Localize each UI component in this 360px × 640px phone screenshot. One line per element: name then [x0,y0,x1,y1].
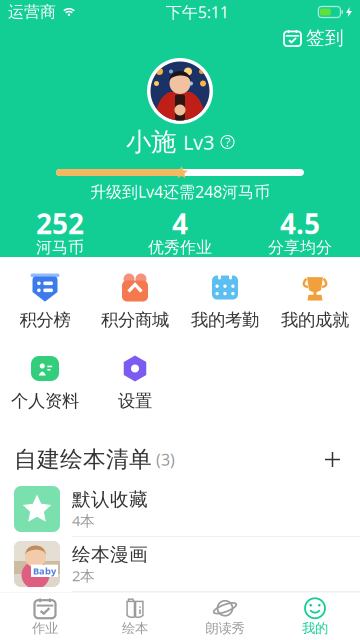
staticText: 我的考勤 [191,309,259,331]
button[interactable]: 我的成就 [270,272,360,329]
staticText: 分享均分 [268,238,332,257]
staticText: Lv3 [183,129,214,155]
staticText: 作业 [32,620,58,636]
staticText: 我的 [302,620,328,636]
staticText: 朗读秀 [205,620,244,636]
staticText: 默认收藏 [72,488,148,511]
button[interactable]: Add list [319,446,346,473]
staticText: 升级到Lv4还需248河马币 [90,181,270,202]
staticText: (3) [152,449,175,470]
button[interactable]: 设置 [90,353,180,410]
staticText: 设置 [118,390,152,412]
button[interactable]: Baby [0,537,360,592]
staticText: 绘本 [122,620,148,636]
staticText: 优秀作业 [148,238,212,257]
staticText: 积分商城 [101,309,169,331]
button[interactable]: 我的考勤 [180,272,270,329]
button[interactable]: 积分榜 [0,272,90,329]
button[interactable]: 作业 [0,592,90,640]
button[interactable]: 绘本 [90,592,180,640]
staticText: 运营商 [8,2,56,22]
staticText: 个人资料 [11,390,79,412]
staticText: 下午5:11 [166,1,229,23]
staticText: 积分榜 [19,309,70,331]
staticText: 我的成就 [281,309,349,331]
button[interactable]: 签到 [274,22,354,53]
staticText: 绘本漫画 [72,543,148,566]
staticText: 自建绘本清单 [14,446,152,473]
staticText: 签到 [306,26,344,49]
button[interactable]: 默认收藏 [0,482,360,537]
staticText: Baby [33,565,56,577]
staticText: 4本 [72,511,95,530]
button[interactable]: 积分商城 [90,272,180,329]
staticText: 河马币 [36,238,84,257]
button[interactable]: 朗读秀 [180,592,270,640]
staticText: ? [225,134,230,150]
button[interactable]: 个人资料 [0,353,90,410]
staticText: 小施 [126,126,176,157]
staticText: 4.5 [280,205,320,242]
staticText: 2本 [72,566,95,585]
staticText: 4 [172,205,188,242]
button[interactable]: 我的 [270,592,360,640]
staticText: 252 [36,205,84,242]
